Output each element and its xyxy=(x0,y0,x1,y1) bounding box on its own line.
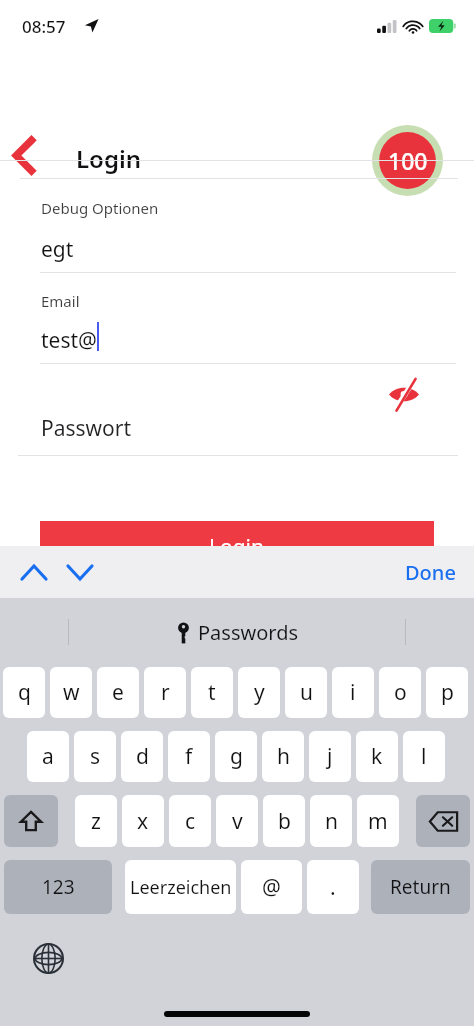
staticText: Login xyxy=(209,533,265,562)
button[interactable]: r xyxy=(144,667,186,718)
button[interactable]: w xyxy=(50,667,92,718)
button[interactable]: q xyxy=(3,667,45,718)
staticText: u xyxy=(300,678,313,707)
staticText: a xyxy=(42,742,54,771)
staticText: j xyxy=(327,742,333,771)
button[interactable]: Passwort xyxy=(0,364,474,455)
button[interactable]: e xyxy=(97,667,139,718)
button[interactable]: h xyxy=(262,731,304,782)
button[interactable]: Return xyxy=(371,860,470,914)
button[interactable]: . xyxy=(307,860,359,914)
button[interactable]: s xyxy=(74,731,116,782)
button[interactable]: j xyxy=(309,731,351,782)
staticText: x xyxy=(137,807,149,836)
button[interactable]: Passwords xyxy=(69,619,405,646)
button[interactable]: Switch keyboard language xyxy=(26,936,70,980)
button[interactable]: Done xyxy=(395,551,466,594)
staticText: l xyxy=(421,742,427,771)
button[interactable]: Login xyxy=(40,521,434,573)
button[interactable]: i xyxy=(332,667,374,718)
staticText: n xyxy=(325,807,338,836)
staticText: Passwords xyxy=(198,619,299,646)
button[interactable]: t xyxy=(191,667,233,718)
staticText: z xyxy=(91,807,101,836)
button[interactable]: Score 100 xyxy=(372,125,443,196)
staticText: Leerzeichen xyxy=(130,875,232,900)
staticText: 08:57 xyxy=(22,15,66,38)
staticText: c xyxy=(185,807,196,836)
staticText: k xyxy=(371,742,383,771)
button[interactable]: a xyxy=(27,731,69,782)
button[interactable]: z xyxy=(75,795,117,847)
button[interactable]: x xyxy=(122,795,164,847)
staticText: Debug Optionen xyxy=(41,198,159,218)
button[interactable]: Email xyxy=(0,273,474,363)
button[interactable]: d xyxy=(121,731,163,782)
staticText: r xyxy=(161,678,170,707)
button[interactable]: Leerzeichen xyxy=(125,860,236,914)
staticText: s xyxy=(90,742,101,771)
staticText: Email xyxy=(41,291,80,311)
staticText: q xyxy=(18,678,31,707)
button[interactable]: g xyxy=(215,731,257,782)
staticText: v xyxy=(232,807,243,836)
button[interactable]: p xyxy=(426,667,468,718)
staticText: o xyxy=(394,678,407,707)
staticText: Return xyxy=(390,874,451,900)
staticText: m xyxy=(368,807,388,836)
button[interactable]: m xyxy=(357,795,399,847)
staticText: Login xyxy=(76,142,142,175)
staticText: test@ xyxy=(41,326,97,355)
staticText: w xyxy=(63,678,80,707)
button[interactable]: 123 xyxy=(4,860,112,914)
staticText: t xyxy=(208,678,216,707)
staticText: h xyxy=(277,742,290,771)
button[interactable]: b xyxy=(263,795,305,847)
button[interactable]: Debug Optionen xyxy=(0,179,474,272)
staticText: d xyxy=(136,742,149,771)
staticText: y xyxy=(254,678,265,707)
button[interactable]: Shift xyxy=(4,795,58,847)
button[interactable]: k xyxy=(356,731,398,782)
button[interactable]: c xyxy=(169,795,211,847)
staticText: 123 xyxy=(42,874,75,900)
staticText: egt xyxy=(41,235,74,264)
staticText: @ xyxy=(262,873,281,902)
staticText: e xyxy=(112,678,124,707)
button[interactable]: Backspace xyxy=(416,795,470,847)
button[interactable]: u xyxy=(285,667,327,718)
staticText: b xyxy=(278,807,291,836)
button[interactable]: Back xyxy=(0,132,46,178)
button[interactable]: Next field xyxy=(58,550,102,594)
staticText: i xyxy=(350,678,356,707)
button[interactable]: v xyxy=(216,795,258,847)
staticText: f xyxy=(185,742,193,771)
staticText: Passwort xyxy=(41,414,132,443)
staticText: 100 xyxy=(388,145,428,176)
button[interactable]: y xyxy=(238,667,280,718)
staticText: . xyxy=(330,873,336,902)
button[interactable]: f xyxy=(168,731,210,782)
button[interactable]: n xyxy=(310,795,352,847)
button[interactable]: o xyxy=(379,667,421,718)
button[interactable]: Previous field xyxy=(12,550,56,594)
button[interactable]: @ xyxy=(241,860,302,914)
button[interactable]: Show password xyxy=(380,369,428,417)
staticText: g xyxy=(230,742,243,771)
staticText: p xyxy=(441,678,454,707)
staticText: Done xyxy=(405,559,456,586)
button[interactable]: l xyxy=(403,731,445,782)
